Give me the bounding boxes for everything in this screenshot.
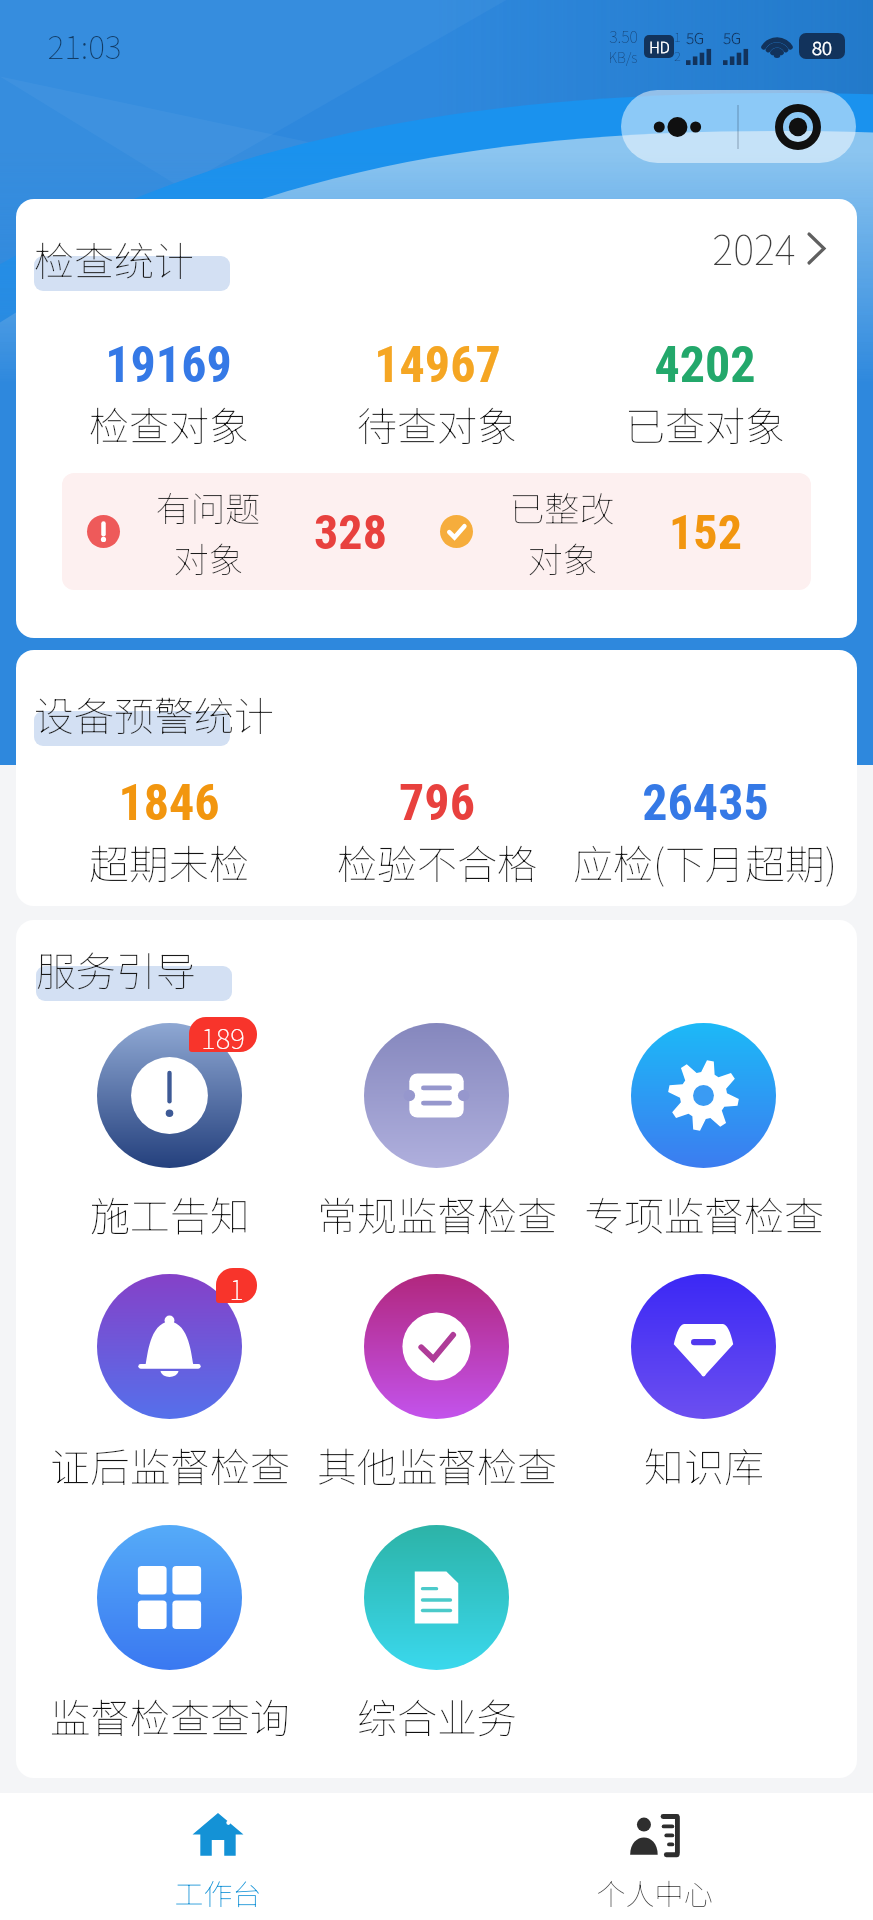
staticText: 3.50 xyxy=(609,24,638,47)
staticText: 4202 xyxy=(654,336,756,395)
button[interactable]: 26435 xyxy=(571,774,839,891)
staticText: 专项监督检查 xyxy=(584,1185,824,1243)
button[interactable]: 1 xyxy=(36,1274,303,1494)
staticText: 检查对象 xyxy=(89,395,249,453)
staticText: 证后监督检查 xyxy=(50,1436,290,1494)
staticText: 1846 xyxy=(118,774,220,833)
staticText: 328 xyxy=(314,504,387,560)
button[interactable]: 个人中心 xyxy=(436,1805,873,1920)
staticText: 2024 xyxy=(712,219,796,277)
staticText: 检验不合格 xyxy=(337,833,537,891)
staticText: 监督检查查询 xyxy=(50,1687,290,1745)
staticText: 施工告知 xyxy=(90,1185,250,1243)
staticText: 5G xyxy=(723,27,741,49)
staticText: 设备预警统计 xyxy=(34,685,274,739)
staticText: 2 xyxy=(674,46,681,65)
button[interactable]: 知识库 xyxy=(570,1274,837,1494)
staticText: 对象 xyxy=(173,532,244,583)
staticText: 有问题 xyxy=(155,481,261,532)
staticText: 1 xyxy=(674,27,681,46)
button[interactable]: 工作台 xyxy=(0,1805,436,1920)
button[interactable]: More options xyxy=(621,90,737,163)
staticText: 综合业务 xyxy=(357,1687,517,1745)
button[interactable]: 监督检查查询 xyxy=(36,1525,303,1745)
staticText: 应检(下月超期) xyxy=(573,833,837,891)
staticText: 工作台 xyxy=(174,1871,262,1913)
staticText: 19169 xyxy=(105,336,232,395)
staticText: 80 xyxy=(812,33,832,59)
button[interactable]: 专项监督检查 xyxy=(570,1023,837,1243)
staticText: 服务引导 xyxy=(36,940,196,994)
button[interactable]: 4202 xyxy=(571,336,839,453)
staticText: 待查对象 xyxy=(357,395,517,453)
staticText: KB/s xyxy=(608,47,638,67)
staticText: HD xyxy=(649,36,670,58)
button[interactable]: 其他监督检查 xyxy=(303,1274,570,1494)
button[interactable]: 189 xyxy=(36,1023,303,1243)
staticText: 21:03 xyxy=(47,22,122,68)
staticText: 检查统计 xyxy=(34,230,194,284)
button[interactable]: 796 xyxy=(303,774,571,891)
button[interactable]: 1846 xyxy=(34,774,303,891)
button[interactable]: 设备预警统计 xyxy=(16,650,857,906)
button[interactable]: 14967 xyxy=(303,336,571,453)
staticText: 14967 xyxy=(374,336,501,395)
staticText: 796 xyxy=(399,774,475,833)
staticText: 26435 xyxy=(642,774,769,833)
button[interactable]: 综合业务 xyxy=(303,1525,570,1745)
staticText: 对象 xyxy=(527,532,598,583)
staticText: 其他监督检查 xyxy=(317,1436,557,1494)
staticText: 个人中心 xyxy=(596,1871,713,1913)
staticText: 超期未检 xyxy=(89,833,249,891)
staticText: 已整改 xyxy=(509,481,615,532)
staticText: 189 xyxy=(201,1017,245,1052)
staticText: 知识库 xyxy=(644,1436,764,1494)
button[interactable]: 19169 xyxy=(34,336,303,453)
button[interactable]: 检查统计 xyxy=(16,199,857,638)
button[interactable]: 常规监督检查 xyxy=(303,1023,570,1243)
staticText: 已查对象 xyxy=(625,395,785,453)
staticText: 5G xyxy=(686,27,704,49)
staticText: 152 xyxy=(669,504,742,560)
button[interactable]: Close mini program xyxy=(739,90,856,163)
button[interactable]: 2024 xyxy=(712,219,826,277)
staticText: 1 xyxy=(229,1268,244,1303)
staticText: 常规监督检查 xyxy=(317,1185,557,1243)
